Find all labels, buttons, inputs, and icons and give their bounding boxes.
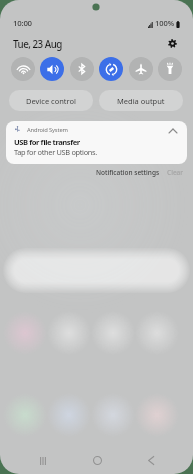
button[interactable]: Android System xyxy=(6,121,187,164)
button[interactable]: Airplane mode xyxy=(129,57,153,81)
button[interactable]: Device control xyxy=(9,90,93,111)
button[interactable]: Wi-Fi xyxy=(11,57,35,81)
button[interactable]: Settings xyxy=(163,34,181,52)
staticText: Clear xyxy=(167,168,184,177)
staticText: 100% xyxy=(153,18,175,28)
staticText: Tue, 23 Aug xyxy=(13,38,62,51)
button[interactable]: Sound xyxy=(40,57,64,81)
button[interactable]: Notification settings xyxy=(92,166,164,179)
staticText: USB for file transfer xyxy=(14,137,80,147)
button[interactable]: Auto rotate xyxy=(99,57,123,81)
button[interactable]: Bluetooth xyxy=(70,57,94,81)
staticText: Android System xyxy=(27,126,68,134)
staticText: Tap for other USB options. xyxy=(14,147,97,157)
button[interactable]: Recents xyxy=(30,448,55,473)
staticText: Notification settings xyxy=(96,168,160,177)
button[interactable]: Media output xyxy=(99,90,183,111)
button[interactable]: Home xyxy=(85,448,110,473)
staticText: Device control xyxy=(26,96,76,106)
button[interactable]: Clear xyxy=(163,166,188,179)
button[interactable]: Flashlight xyxy=(158,57,182,81)
staticText: 10:00 xyxy=(13,18,32,29)
button[interactable]: Back xyxy=(138,448,163,473)
staticText: Media output xyxy=(117,96,165,106)
